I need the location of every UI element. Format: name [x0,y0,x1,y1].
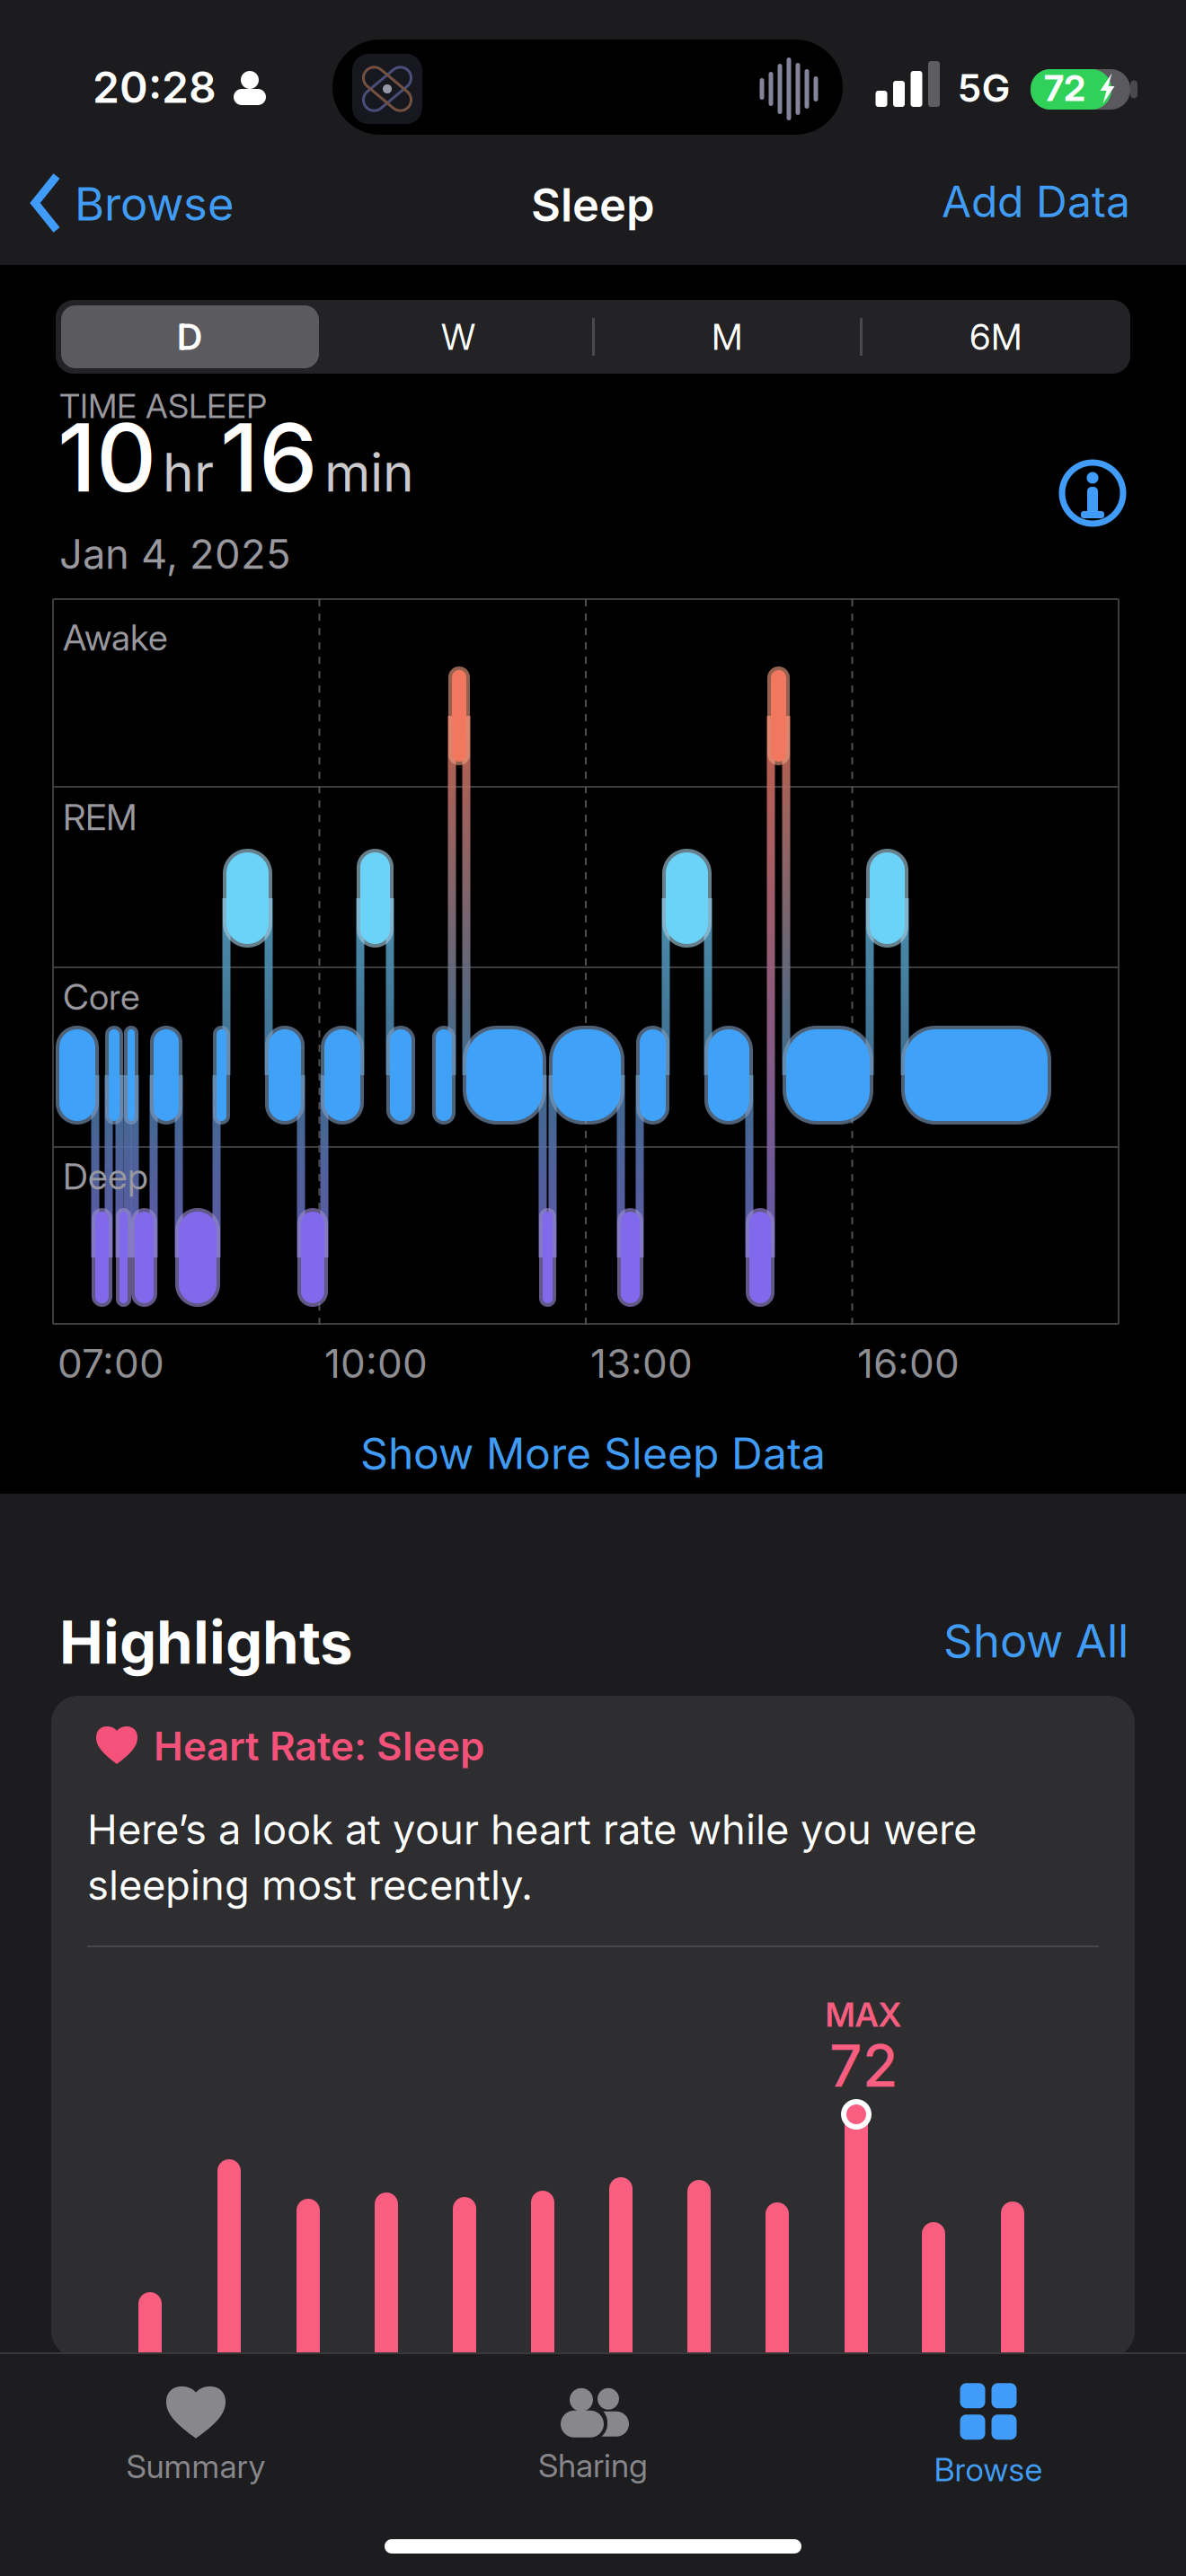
staticText: hr [163,441,214,503]
staticText: Summary [126,2447,266,2486]
staticText: Awake [63,616,168,659]
button[interactable]: Browse [33,176,235,232]
button[interactable]: W [326,303,591,371]
staticText: 16:00 [857,1340,960,1387]
button[interactable]: Summary [48,2364,344,2508]
staticText: 10 [58,402,156,513]
staticText: 6M [969,316,1022,358]
staticText: Browse [75,177,235,231]
staticText: 72 [829,2032,898,2100]
button[interactable]: Show All [943,1614,1128,1668]
staticText: Browse [934,2451,1043,2489]
staticText: Highlights [59,1608,353,1677]
staticText: W [441,316,475,358]
staticText: 72 [1044,67,1085,109]
staticText: 20:28 [93,62,217,113]
staticText: M [712,316,742,358]
staticText: 13:00 [590,1340,693,1387]
button[interactable]: Heart Rate: Sleep [51,1696,1135,2358]
button[interactable]: D [57,303,322,371]
button[interactable]: M [594,303,859,371]
staticText: 07:00 [58,1340,164,1387]
staticText: Show More Sleep Data [360,1428,826,1479]
staticText: 16 [220,402,318,513]
staticText: Deep [63,1155,148,1197]
staticText: Here’s a look at your heart rate while y… [87,1805,977,1853]
button[interactable]: More Information [1059,460,1126,526]
staticText: Show All [943,1614,1128,1668]
staticText: 5G [957,65,1010,111]
staticText: sleeping most recently. [87,1861,533,1909]
staticText: Sleep [531,178,655,232]
staticText: 10:00 [324,1340,428,1387]
staticText: MAX [825,1995,902,2034]
staticText: Jan 4, 2025 [59,530,291,578]
staticText: Heart Rate: Sleep [154,1723,484,1769]
staticText: D [177,316,202,358]
staticText: REM [63,796,137,838]
button[interactable]: Sharing [445,2364,741,2508]
button[interactable]: 6M [863,303,1128,371]
button[interactable]: Browse [840,2364,1137,2508]
staticText: Add Data [942,176,1130,227]
staticText: Sharing [538,2446,648,2485]
button[interactable]: Add Data [942,176,1130,227]
button[interactable]: Show More Sleep Data [360,1428,826,1479]
staticText: Core [63,975,140,1018]
staticText: min [324,441,414,503]
staticText: TIME ASLEEP [59,386,267,426]
